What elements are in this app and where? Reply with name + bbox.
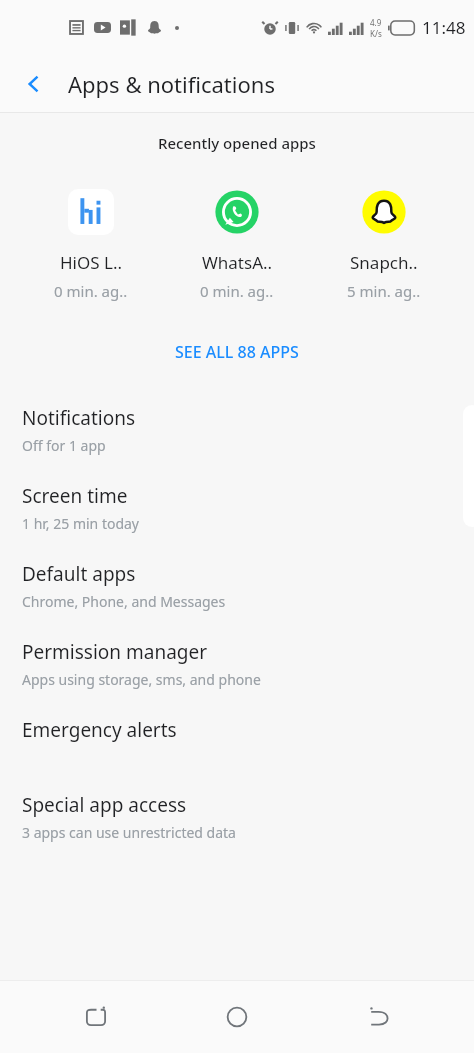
staticText: 0 min. ag.. [200,281,274,301]
staticText: 11:48 [422,16,466,39]
staticText: Screen time [22,483,128,509]
staticText: Apps using storage, sms, and phone [22,670,261,689]
button[interactable]: Screen time [0,469,474,547]
button[interactable]: Recent apps [50,987,142,1047]
button[interactable]: Snapch.. [318,187,450,303]
button[interactable]: Notifications [0,391,474,469]
staticText: Chrome, Phone, and Messages [22,592,226,611]
staticText: Default apps [22,561,136,587]
button[interactable]: Back [12,62,56,106]
staticText: Special app access [22,792,187,818]
button[interactable]: Home [191,987,283,1047]
staticText: Off for 1 app [22,436,106,455]
button[interactable]: Back [333,987,425,1047]
staticText: 5 min. ag.. [347,281,421,301]
button[interactable]: Special app access [0,778,474,856]
staticText: Permission manager [22,639,208,665]
staticText: SEE ALL 88 APPS [175,341,299,363]
staticText: WhatsA.. [202,251,273,274]
staticText: 4.9 [370,17,382,28]
staticText: 3 apps can use unrestricted data [22,823,236,842]
staticText: Apps & notifications [68,69,275,99]
staticText: K/s [370,28,382,39]
button[interactable]: Emergency alerts [0,703,474,778]
staticText: Recently opened apps [158,133,316,153]
button[interactable]: Permission manager [0,625,474,703]
staticText: Emergency alerts [22,717,177,743]
staticText: HiOS L.. [60,251,123,274]
staticText: 0 min. ag.. [54,281,128,301]
staticText: 1 hr, 25 min today [22,514,140,533]
button[interactable]: HiOS L.. [25,187,157,303]
staticText: Snapch.. [350,251,418,274]
button[interactable]: WhatsA.. [171,187,303,303]
staticText: Notifications [22,405,136,431]
button[interactable]: Default apps [0,547,474,625]
button[interactable]: SEE ALL 88 APPS [157,333,317,371]
